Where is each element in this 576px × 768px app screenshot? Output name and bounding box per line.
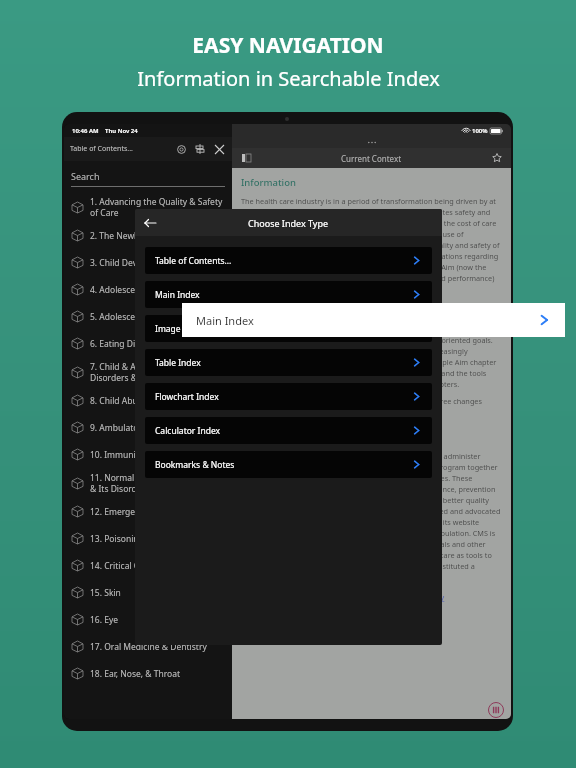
staticText: 15. Skin xyxy=(90,587,121,599)
button[interactable]: 5. Adolescent Health xyxy=(64,303,232,330)
button[interactable]: Back xyxy=(141,214,159,232)
staticText: Image Index xyxy=(155,323,206,335)
button[interactable]: Bookmarks xyxy=(193,142,207,156)
button[interactable]: 6. Eating Disorders xyxy=(64,330,232,357)
staticText: Current Context xyxy=(341,153,402,164)
button[interactable]: 7. Child & Adolescent Psychiatric Disord… xyxy=(64,357,232,387)
staticText: Thu Nov 24 xyxy=(105,127,138,135)
staticText: 16. Eye xyxy=(90,614,119,626)
staticText: 14. Critical Care xyxy=(90,560,153,572)
button[interactable]: 15. Skin xyxy=(64,579,232,606)
button[interactable]: 4. Adolescent Medicine xyxy=(64,276,232,303)
staticText: 9. Ambulatory & Office Pediatrics xyxy=(90,422,222,434)
staticText: Search xyxy=(71,170,100,182)
staticText: Flowchart Index xyxy=(155,391,219,403)
staticText: 12. Emergencies & Injuries xyxy=(90,506,197,518)
staticText: 3. Child Development xyxy=(90,257,176,269)
staticText: 5. Adolescent Health xyxy=(90,311,172,323)
button[interactable]: Image Index xyxy=(145,315,432,342)
staticText: 1. Advancing the Quality & Safety of Car… xyxy=(90,196,223,218)
staticText: Bookmarks & Notes xyxy=(155,459,235,471)
button[interactable]: Search xyxy=(174,142,188,156)
staticText: 8. Child Abuse & Neglect xyxy=(90,395,188,407)
staticText: 4. Adolescent Medicine xyxy=(90,284,182,296)
staticText: Main Index xyxy=(155,289,200,301)
staticText: 100% xyxy=(472,127,488,135)
button[interactable]: 10. Immunization xyxy=(64,441,232,468)
staticText: 6. Eating Disorders xyxy=(90,338,166,350)
staticText: 17. Oral Medicine & Dentistry xyxy=(90,641,207,653)
staticText: 2. The Newborn Infant xyxy=(90,230,180,242)
staticText: Table Index xyxy=(155,357,201,369)
staticText: Table of Contents... xyxy=(70,144,133,154)
button[interactable]: Favorite xyxy=(490,151,504,165)
button[interactable]: Close xyxy=(212,142,226,156)
button[interactable]: Table Index xyxy=(145,349,432,376)
staticText: 11. Normal Childhood Nutrition & Its Dis… xyxy=(90,472,216,494)
staticText: 13. Poisoning xyxy=(90,533,144,545)
staticText: Calculator Index xyxy=(155,425,221,437)
staticText: patients, is now an expected part of pri… xyxy=(241,302,502,389)
staticText: 10. Immunization xyxy=(90,449,161,461)
staticText: 10:46 AM xyxy=(72,127,99,135)
button[interactable]: Bookmarks & Notes xyxy=(145,451,432,478)
button[interactable]: Main Index xyxy=(145,281,432,308)
staticText: Choose Index Type xyxy=(248,217,329,229)
button[interactable]: 16. Eye xyxy=(64,606,232,633)
staticText: 18. Ear, Nose, & Throat xyxy=(90,668,181,680)
button[interactable]: Table of Contents... xyxy=(145,247,432,274)
button[interactable]: 11. Normal Childhood Nutrition & Its Dis… xyxy=(64,468,232,498)
staticText: Information xyxy=(241,176,296,189)
staticText: Information in Searchable Index xyxy=(137,65,440,92)
button[interactable]: Calculator Index xyxy=(145,417,432,444)
button[interactable]: 3. Child Development xyxy=(64,249,232,276)
button[interactable]: 2. The Newborn Infant xyxy=(64,222,232,249)
button[interactable]: 12. Emergencies & Injuries xyxy=(64,498,232,525)
button[interactable]: 8. Child Abuse & Neglect xyxy=(64,387,232,414)
button[interactable]: 14. Critical Care xyxy=(64,552,232,579)
staticText: https:// www.cms.gov/medicare/medicare-f… xyxy=(241,582,502,614)
staticText: The health care industry is in a period … xyxy=(241,196,502,294)
staticText: While there have been many changes, ther… xyxy=(241,396,502,582)
staticText: 7. Child & Adolescent Psychiatric Disord… xyxy=(90,361,220,383)
staticText: Table of Contents... xyxy=(155,255,232,267)
button[interactable]: 1. Advancing the Quality & Safety of Car… xyxy=(64,192,232,222)
button[interactable]: 9. Ambulatory & Office Pediatrics xyxy=(64,414,232,441)
button[interactable]: 17. Oral Medicine & Dentistry xyxy=(64,633,232,660)
staticText: EASY NAVIGATION xyxy=(192,31,384,60)
button[interactable]: 13. Poisoning xyxy=(64,525,232,552)
button[interactable]: 18. Ear, Nose, & Throat xyxy=(64,660,232,687)
button[interactable]: Layout xyxy=(239,151,253,165)
button[interactable]: Flowchart Index xyxy=(145,383,432,410)
button[interactable]: Main Index xyxy=(182,303,565,337)
staticText: Main Index xyxy=(196,313,254,328)
